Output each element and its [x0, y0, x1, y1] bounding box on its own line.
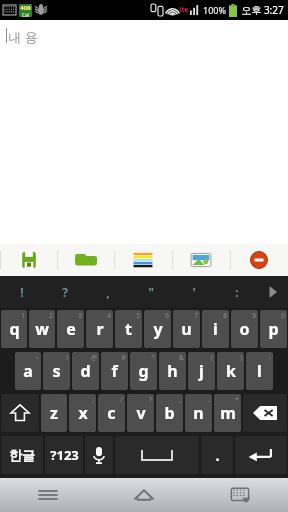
staticText: * — [235, 395, 239, 404]
button[interactable]: Space — [115, 436, 199, 474]
staticText: @ — [91, 353, 97, 362]
staticText: q — [9, 318, 20, 340]
button[interactable]: z — [41, 394, 67, 432]
staticText: s — [52, 360, 61, 382]
button[interactable]: q — [1, 310, 27, 348]
button[interactable]: Cancel — [230, 244, 288, 276]
button[interactable]: Period — [201, 436, 233, 474]
staticText: z — [50, 402, 58, 424]
staticText: 한글 — [9, 447, 35, 463]
staticText: # — [121, 353, 126, 362]
button[interactable]: e — [57, 310, 84, 348]
staticText: g — [138, 360, 149, 382]
staticText: , — [179, 395, 181, 404]
staticText: n — [193, 402, 204, 424]
staticText: : — [63, 395, 65, 404]
staticText: 7 — [194, 311, 198, 320]
staticText: 6 — [165, 311, 169, 320]
staticText: u — [181, 318, 192, 340]
staticText: 1 — [21, 311, 25, 320]
staticText: / — [120, 395, 123, 404]
button[interactable]: n — [185, 394, 212, 432]
staticText: f — [111, 360, 118, 382]
staticText: ) — [240, 353, 242, 362]
staticText: , — [106, 284, 110, 300]
staticText: e — [66, 318, 76, 340]
button[interactable]: m — [214, 394, 241, 432]
staticText: ' — [192, 284, 196, 300]
button[interactable]: " — [129, 276, 172, 308]
button[interactable]: , — [86, 276, 129, 308]
button[interactable]: i — [202, 310, 229, 348]
staticText: v — [136, 402, 146, 424]
staticText: : — [235, 284, 239, 300]
button[interactable]: f — [101, 352, 128, 390]
button[interactable]: More suggestions — [258, 276, 288, 308]
staticText: Cal — [22, 12, 29, 17]
button[interactable]: r — [86, 310, 113, 348]
button[interactable]: t — [115, 310, 142, 348]
staticText: . — [208, 395, 210, 404]
button[interactable]: Open — [57, 244, 114, 276]
button[interactable]: s — [43, 352, 70, 390]
staticText: ?123 — [50, 446, 79, 464]
staticText: 오후 3:27 — [241, 3, 284, 17]
staticText: - — [268, 353, 271, 362]
button[interactable]: ? — [43, 276, 86, 308]
staticText: i — [213, 318, 218, 340]
button[interactable]: k — [217, 352, 244, 390]
staticText: p — [268, 318, 279, 340]
button[interactable]: d — [72, 352, 99, 390]
button[interactable]: Hide keyboard — [192, 478, 288, 512]
staticText: l — [257, 360, 262, 382]
button[interactable]: Menu — [0, 478, 96, 512]
button[interactable]: p — [260, 310, 287, 348]
button[interactable]: Insert image — [172, 244, 230, 276]
button[interactable]: Shift — [1, 394, 39, 432]
button[interactable]: w — [29, 310, 55, 348]
button[interactable]: Layers — [114, 244, 172, 276]
button[interactable]: Save — [0, 244, 57, 276]
button[interactable]: y — [144, 310, 171, 348]
button[interactable]: c — [98, 394, 125, 432]
staticText: a — [23, 360, 33, 382]
button[interactable]: g — [130, 352, 157, 390]
button[interactable]: 한글 — [1, 436, 43, 474]
button[interactable]: : — [215, 276, 258, 308]
staticText: 3 — [78, 311, 82, 320]
button[interactable]: j — [188, 352, 215, 390]
button[interactable]: Home — [96, 478, 192, 512]
staticText: & — [179, 353, 184, 362]
button[interactable]: h — [159, 352, 186, 390]
staticText: c — [107, 402, 116, 424]
button[interactable]: ! — [0, 276, 43, 308]
staticText: b — [164, 402, 175, 424]
button[interactable]: v — [127, 394, 154, 432]
button[interactable]: ' — [172, 276, 215, 308]
button[interactable]: Voice input — [85, 436, 113, 474]
staticText: lte — [179, 5, 189, 15]
button[interactable]: b — [156, 394, 183, 432]
button[interactable]: Enter — [235, 436, 287, 474]
staticText: . — [215, 445, 220, 465]
staticText: k — [226, 360, 236, 382]
staticText: 0 — [281, 311, 285, 320]
staticText: j — [199, 360, 204, 382]
button[interactable]: x — [69, 394, 96, 432]
staticText: 2 — [49, 311, 53, 320]
staticText: d — [80, 360, 91, 382]
button[interactable]: 내 용 — [0, 20, 288, 244]
staticText: ( — [211, 353, 213, 362]
staticText: 5 — [136, 311, 140, 320]
button[interactable]: ?123 — [45, 436, 83, 474]
staticText: ! — [66, 353, 68, 362]
button[interactable]: a — [15, 352, 41, 390]
staticText: 9 — [252, 311, 256, 320]
button[interactable]: l — [246, 352, 273, 390]
staticText: 400 — [20, 4, 31, 12]
staticText: t — [125, 318, 132, 340]
button[interactable]: u — [173, 310, 200, 348]
button[interactable]: o — [231, 310, 258, 348]
button[interactable]: Backspace — [243, 394, 287, 432]
staticText: o — [239, 318, 250, 340]
